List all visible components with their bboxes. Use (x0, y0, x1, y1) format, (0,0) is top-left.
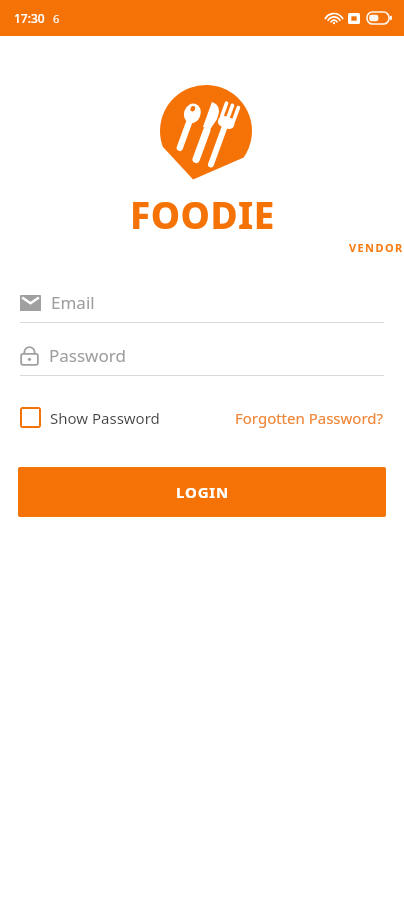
button[interactable]: Forgotten Password? (235, 408, 384, 428)
staticText: Forgotten Password? (235, 408, 384, 428)
staticText: Email (51, 291, 95, 314)
button[interactable]: Email (20, 291, 384, 323)
staticText: 17:30 (14, 10, 45, 26)
staticText: VENDOR (349, 240, 404, 255)
staticText: LOGIN (176, 482, 229, 502)
button[interactable]: LOGIN (18, 467, 386, 517)
staticText: Password (49, 344, 126, 367)
staticText: 6 (53, 11, 60, 26)
button[interactable]: Password (20, 344, 384, 376)
button[interactable]: Show Password (20, 407, 160, 428)
staticText: FOODIE (130, 189, 275, 239)
staticText: Show Password (50, 408, 160, 428)
